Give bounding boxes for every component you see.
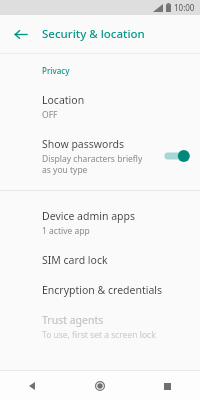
button[interactable]: Encryption & credentials (0, 275, 200, 305)
staticText: Device admin apps (42, 209, 136, 223)
button[interactable]: Device admin apps (0, 201, 200, 245)
button[interactable]: Back (8, 22, 32, 46)
staticText: Display characters briefly as you type (42, 153, 143, 175)
button[interactable]: SIM card lock (0, 245, 200, 275)
staticText: To use, first set a screen lock (42, 329, 156, 341)
staticText: 10:00 (174, 2, 195, 13)
staticText: Encryption & credentials (42, 283, 163, 297)
button[interactable]: Show passwords toggle (162, 147, 192, 165)
staticText: Privacy (42, 65, 70, 76)
staticText: Trust agents (42, 313, 104, 327)
button[interactable]: Recent apps (155, 374, 179, 398)
staticText: 1 active app (42, 225, 90, 237)
staticText: SIM card lock (42, 253, 108, 267)
button[interactable]: Trust agents (0, 305, 200, 349)
button[interactable]: Show passwords (0, 129, 200, 183)
staticText: Security & location (42, 26, 145, 42)
staticText: Location (42, 93, 85, 107)
staticText: OFF (42, 109, 58, 121)
staticText: Show passwords (42, 137, 125, 151)
button[interactable]: Location (0, 85, 200, 129)
button[interactable]: Back (21, 374, 45, 398)
button[interactable]: Home (88, 374, 112, 398)
